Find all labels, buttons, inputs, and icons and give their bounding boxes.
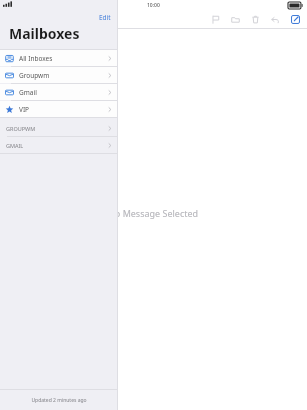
staticText: GROUPWM	[6, 125, 36, 132]
staticText: 10:00	[147, 2, 160, 9]
button[interactable]: Delete	[250, 14, 261, 25]
button[interactable]: All Inboxes	[0, 50, 117, 66]
button[interactable]: Flag	[210, 14, 221, 25]
staticText: Mailboxes	[9, 24, 80, 43]
staticText: Updated 2 minutes ago	[31, 397, 87, 404]
button[interactable]: Move to folder	[230, 14, 241, 25]
button[interactable]: Gmail	[0, 84, 117, 100]
button[interactable]: VIP	[0, 101, 117, 117]
staticText: Edit	[99, 13, 111, 22]
button[interactable]: Compose	[290, 14, 301, 25]
staticText: All Inboxes	[19, 54, 53, 63]
staticText: VIP	[19, 105, 30, 114]
button[interactable]: Groupwm	[0, 67, 117, 83]
button[interactable]: GROUPWM	[0, 120, 117, 136]
button[interactable]: GMAIL	[0, 137, 117, 153]
button[interactable]: Reply	[270, 14, 281, 25]
staticText: Gmail	[19, 88, 37, 97]
staticText: No Message Selected	[108, 207, 199, 219]
staticText: Groupwm	[19, 71, 50, 80]
staticText: GMAIL	[6, 142, 24, 149]
button[interactable]: Edit	[93, 12, 117, 23]
